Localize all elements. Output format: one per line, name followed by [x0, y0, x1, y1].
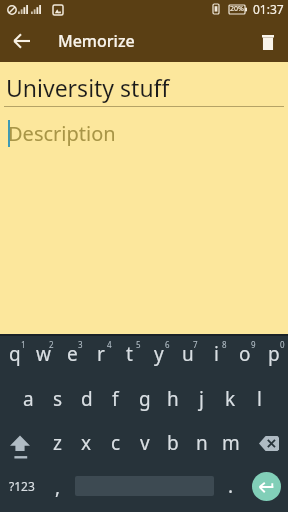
staticText: 2: [49, 339, 54, 350]
button[interactable]: .: [216, 466, 245, 512]
button[interactable]: m: [216, 422, 245, 466]
button[interactable]: o: [230, 336, 259, 378]
button[interactable]: l: [245, 378, 274, 422]
button[interactable]: f: [101, 378, 130, 422]
button[interactable]: d: [72, 378, 101, 422]
staticText: 9: [251, 339, 256, 350]
button[interactable]: p: [259, 336, 288, 378]
button[interactable]: a: [14, 378, 43, 422]
staticText: q: [9, 341, 21, 367]
button[interactable]: z: [43, 422, 72, 466]
staticText: 7: [193, 339, 198, 350]
staticText: University stuff: [6, 72, 170, 103]
staticText: 01:37: [253, 1, 284, 17]
staticText: 5: [136, 339, 141, 350]
staticText: l: [257, 386, 262, 412]
staticText: g: [139, 386, 151, 412]
button[interactable]: y: [144, 336, 173, 378]
staticText: i: [214, 341, 219, 367]
button[interactable]: Enter: [245, 466, 288, 512]
button[interactable]: h: [158, 378, 187, 422]
staticText: 4: [107, 339, 112, 350]
staticText: t: [126, 341, 133, 367]
button[interactable]: w: [29, 336, 58, 378]
staticText: m: [222, 430, 240, 456]
staticText: e: [67, 341, 78, 367]
staticText: .: [228, 473, 234, 499]
staticText: h: [167, 386, 179, 412]
staticText: Memorize: [58, 30, 135, 52]
staticText: w: [36, 341, 51, 367]
staticText: a: [23, 386, 34, 412]
staticText: ?123: [9, 478, 35, 494]
staticText: x: [81, 430, 92, 456]
button[interactable]: c: [101, 422, 130, 466]
staticText: o: [239, 341, 251, 367]
button[interactable]: Delete: [252, 26, 284, 58]
button[interactable]: x: [72, 422, 101, 466]
button[interactable]: s: [43, 378, 72, 422]
staticText: 20%: [230, 4, 244, 14]
button[interactable]: Shift: [0, 422, 43, 466]
staticText: z: [53, 430, 62, 456]
staticText: 3: [78, 339, 83, 350]
button[interactable]: i: [202, 336, 231, 378]
button[interactable]: ?123: [0, 466, 43, 512]
button[interactable]: Back: [5, 25, 37, 57]
button[interactable]: b: [158, 422, 187, 466]
button[interactable]: e: [58, 336, 87, 378]
staticText: Description: [8, 120, 116, 147]
button[interactable]: r: [86, 336, 115, 378]
staticText: d: [81, 386, 93, 412]
staticText: v: [140, 430, 150, 456]
button[interactable]: t: [115, 336, 144, 378]
button[interactable]: g: [130, 378, 159, 422]
staticText: k: [225, 386, 236, 412]
staticText: f: [112, 386, 119, 412]
button[interactable]: Space: [72, 466, 216, 512]
button[interactable]: n: [187, 422, 216, 466]
staticText: p: [268, 341, 280, 367]
button[interactable]: j: [187, 378, 216, 422]
button[interactable]: v: [130, 422, 159, 466]
button[interactable]: Backspace: [245, 422, 288, 466]
staticText: n: [196, 430, 208, 456]
button[interactable]: u: [173, 336, 202, 378]
staticText: s: [53, 386, 63, 412]
button[interactable]: q: [0, 336, 29, 378]
staticText: 0: [280, 339, 285, 350]
staticText: j: [199, 386, 204, 412]
button[interactable]: k: [216, 378, 245, 422]
staticText: u: [182, 341, 194, 367]
staticText: 1: [21, 339, 26, 350]
staticText: c: [111, 430, 121, 456]
staticText: 8: [222, 339, 227, 350]
staticText: b: [167, 430, 179, 456]
staticText: y: [154, 341, 164, 367]
staticText: 6: [165, 339, 170, 350]
staticText: r: [97, 341, 105, 367]
button[interactable]: ,: [43, 466, 72, 512]
staticText: ,: [55, 474, 61, 500]
